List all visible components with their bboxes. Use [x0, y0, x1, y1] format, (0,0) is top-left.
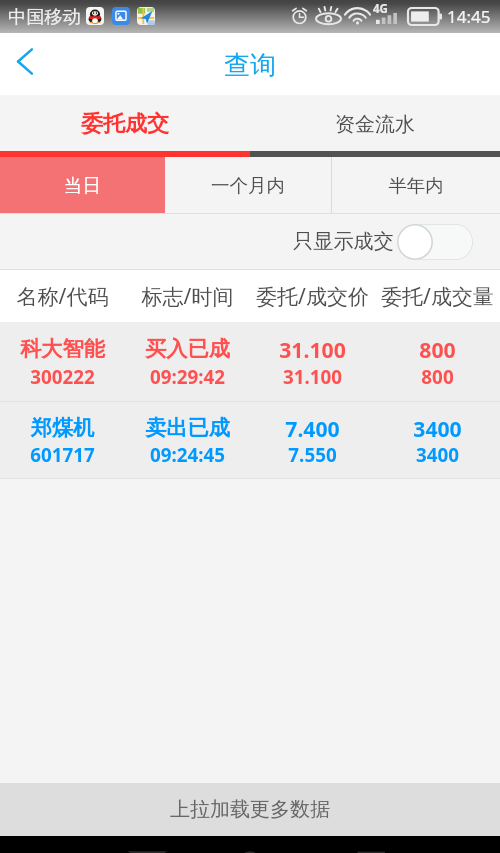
- staticText: 800: [375, 364, 500, 390]
- staticText: 300222: [0, 364, 125, 390]
- staticText: 一个月内: [211, 174, 285, 197]
- staticText: 科大智能: [0, 336, 125, 363]
- staticText: 601717: [0, 442, 125, 468]
- staticText: 卖出已成: [125, 415, 250, 442]
- button[interactable]: 委托成交: [0, 95, 250, 151]
- staticText: 郑煤机: [0, 415, 125, 442]
- button[interactable]: Only show filled: [397, 224, 473, 260]
- button[interactable]: 上拉加载更多数据: [0, 783, 500, 836]
- button[interactable]: 一个月内: [165, 157, 331, 213]
- button[interactable]: 当日: [0, 157, 165, 213]
- staticText: 09:29:42: [125, 364, 250, 390]
- staticText: 800: [375, 335, 500, 364]
- staticText: 买入已成: [125, 336, 250, 363]
- staticText: 资金流水: [335, 112, 415, 137]
- staticText: 中国移动: [8, 5, 81, 28]
- staticText: 7.550: [250, 442, 375, 468]
- staticText: 委托/成交量: [375, 282, 500, 311]
- staticText: 31.100: [250, 364, 375, 390]
- staticText: 半年内: [388, 174, 444, 197]
- staticText: 委托/成交价: [250, 282, 375, 311]
- staticText: 查询: [224, 49, 276, 82]
- staticText: 只显示成交: [293, 229, 394, 254]
- staticText: 31.100: [250, 335, 375, 364]
- button[interactable]: 科大智能: [0, 322, 500, 401]
- staticText: 3400: [375, 442, 500, 468]
- button[interactable]: 资金流水: [250, 95, 500, 151]
- staticText: 09:24:45: [125, 442, 250, 468]
- staticText: 委托成交: [81, 110, 169, 138]
- staticText: 14:45: [447, 5, 491, 28]
- staticText: 4G: [373, 1, 388, 17]
- staticText: 7.400: [250, 414, 375, 443]
- button[interactable]: 半年内: [332, 157, 500, 213]
- button[interactable]: 郑煤机: [0, 402, 500, 478]
- button[interactable]: Back: [0, 33, 50, 95]
- staticText: 上拉加载更多数据: [170, 797, 330, 822]
- staticText: 标志/时间: [125, 282, 250, 311]
- staticText: 名称/代码: [0, 282, 125, 311]
- staticText: 当日: [64, 174, 101, 197]
- staticText: 3400: [375, 414, 500, 443]
